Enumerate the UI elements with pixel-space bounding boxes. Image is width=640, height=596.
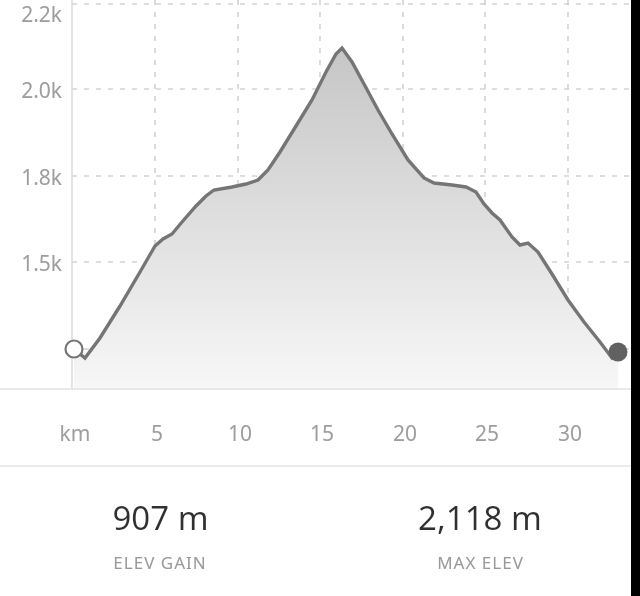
staticText: 25 bbox=[447, 419, 527, 448]
staticText: 20 bbox=[365, 419, 445, 448]
staticText: MAX ELEV bbox=[437, 551, 524, 574]
button[interactable]: Elevation profile chart bbox=[0, 0, 640, 596]
staticText: ELEV GAIN bbox=[113, 551, 207, 574]
staticText: 2.2k bbox=[0, 0, 62, 29]
button[interactable]: 907 m bbox=[0, 493, 320, 576]
staticText: 2.0k bbox=[0, 76, 62, 105]
staticText: 1.5k bbox=[0, 249, 62, 278]
button[interactable]: 2,118 m bbox=[320, 493, 640, 576]
staticText: 907 m bbox=[112, 495, 209, 540]
staticText: km bbox=[35, 419, 115, 448]
staticText: 1.8k bbox=[0, 163, 62, 192]
staticText: 15 bbox=[282, 419, 362, 448]
staticText: 2,118 m bbox=[418, 495, 542, 540]
staticText: 5 bbox=[117, 419, 197, 448]
staticText: 10 bbox=[200, 419, 280, 448]
staticText: 30 bbox=[530, 419, 610, 448]
